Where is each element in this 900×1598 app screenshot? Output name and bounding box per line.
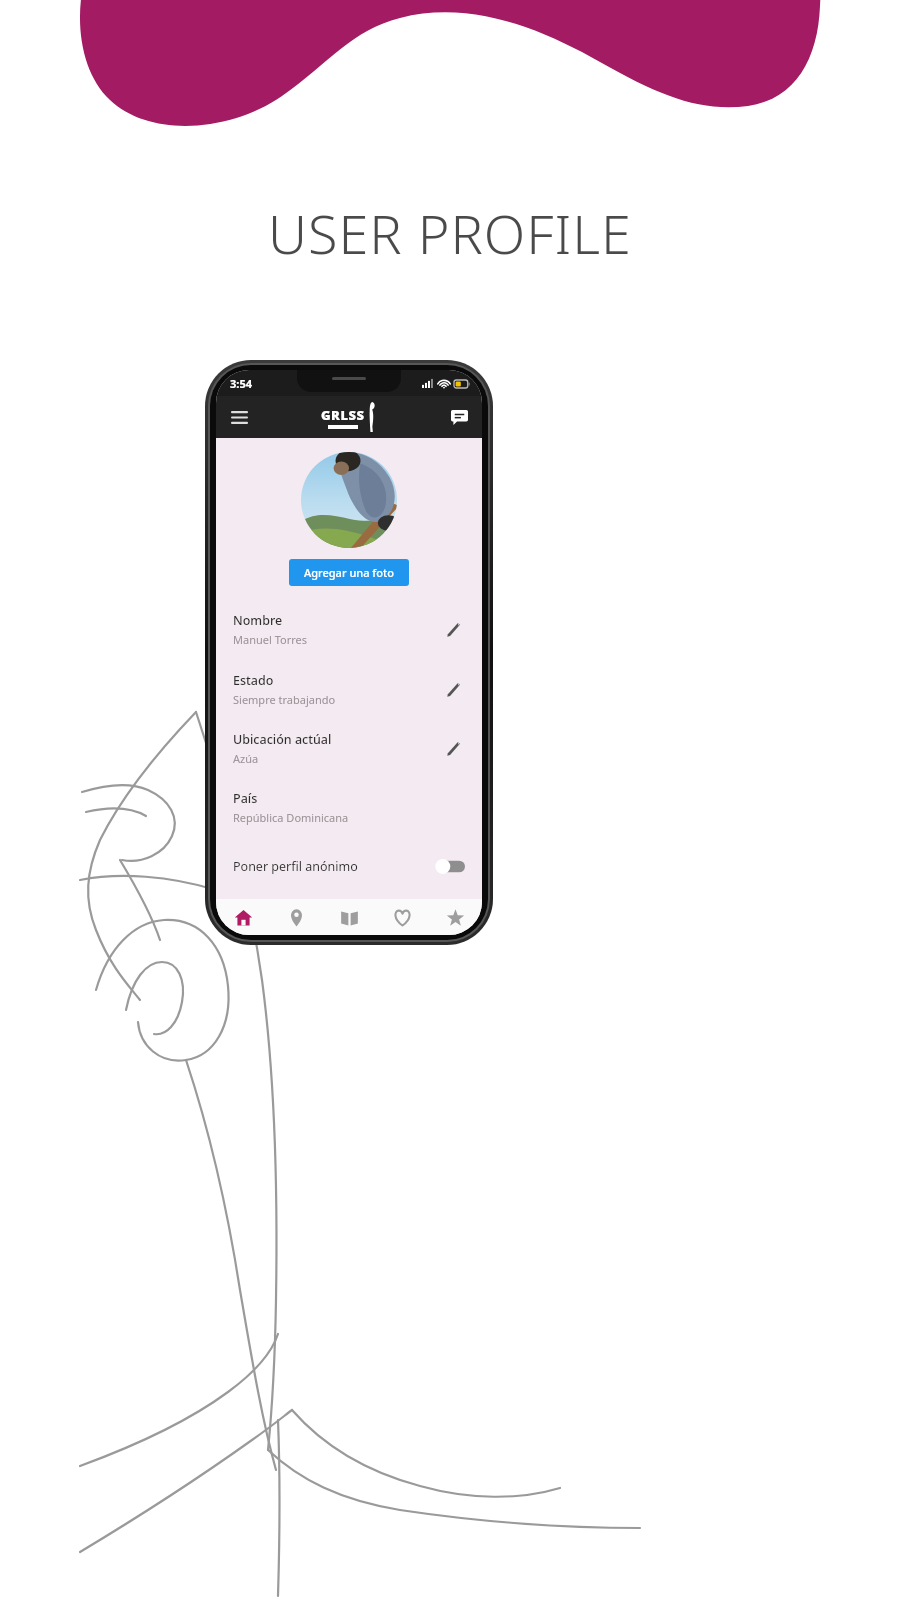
button[interactable]: Edit Estado <box>443 679 465 701</box>
button[interactable]: Messages <box>445 403 473 431</box>
button[interactable]: Poner perfil anónimo <box>216 851 482 881</box>
staticText: Agregar una foto <box>304 565 394 580</box>
staticText: Estado <box>233 672 274 689</box>
button[interactable]: Starred <box>429 899 482 935</box>
button[interactable]: Anonymous profile toggle <box>435 859 465 874</box>
button[interactable]: Profile photo <box>301 452 397 548</box>
button[interactable]: Home <box>216 899 270 935</box>
staticText: 3:54 <box>230 376 252 391</box>
button[interactable]: País <box>216 790 482 825</box>
button[interactable]: Places <box>270 899 323 935</box>
button[interactable]: Nombre <box>216 612 482 647</box>
staticText: País <box>233 790 258 807</box>
button[interactable]: Estado <box>216 672 482 707</box>
button[interactable]: Guide <box>323 899 376 935</box>
button[interactable]: Edit Ubicación actúal <box>443 738 465 760</box>
staticText: Ubicación actúal <box>233 731 332 748</box>
button[interactable]: Edit Nombre <box>443 619 465 641</box>
button[interactable]: Agregar una foto <box>289 559 409 586</box>
staticText: Poner perfil anónimo <box>233 858 358 875</box>
staticText: Siempre trabajando <box>233 692 336 707</box>
staticText: República Dominicana <box>233 810 349 825</box>
button[interactable]: Favorites <box>376 899 429 935</box>
staticText: GRLSS <box>321 406 365 424</box>
staticText: USER PROFILE <box>268 196 632 270</box>
button[interactable]: Menu <box>224 402 254 432</box>
staticText: Manuel Torres <box>233 632 307 647</box>
staticText: Nombre <box>233 612 283 629</box>
button[interactable]: Ubicación actúal <box>216 731 482 766</box>
staticText: Azúa <box>233 751 259 766</box>
